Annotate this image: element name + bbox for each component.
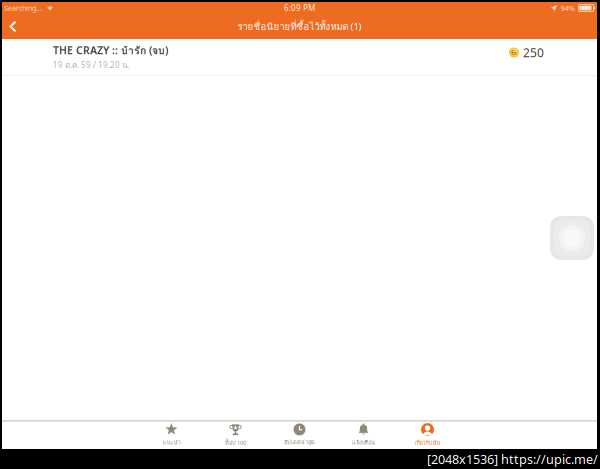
staticText: THE CRAZY :: บ้ารัก (จบ) — [53, 42, 168, 59]
staticText: แจ้งเตือน — [352, 438, 375, 447]
staticText: รายชื่อนิยายที่ซื้อไว้ทั้งหมด (1) — [237, 19, 361, 34]
button[interactable]: AssistiveTouch — [550, 216, 594, 260]
button[interactable]: อัปเดตล่าสุด — [267, 421, 331, 449]
button[interactable]: ท็อป 100 — [203, 421, 267, 449]
staticText: 19 ต.ค. 59 / 19.20 น. — [53, 59, 129, 72]
button[interactable]: THE CRAZY :: บ้ารัก (จบ) — [2, 39, 597, 75]
button[interactable]: แนะนำ — [139, 421, 203, 449]
staticText: ท็อป 100 — [225, 438, 246, 447]
staticText: Searching... — [4, 3, 42, 13]
button[interactable]: Back — [2, 14, 24, 39]
staticText: แนะนำ — [162, 438, 180, 447]
button[interactable]: เกี่ยวกับฉัน — [395, 421, 459, 449]
staticText: 6:09 PM — [284, 3, 315, 13]
staticText: เกี่ยวกับฉัน — [414, 438, 440, 447]
staticText: อัปเดตล่าสุด — [284, 438, 315, 447]
staticText: 94% — [560, 3, 574, 13]
staticText: [2048x1536] https://upic.me/ — [427, 450, 598, 468]
button[interactable]: แจ้งเตือน — [331, 421, 395, 449]
staticText: 250 — [523, 44, 544, 61]
